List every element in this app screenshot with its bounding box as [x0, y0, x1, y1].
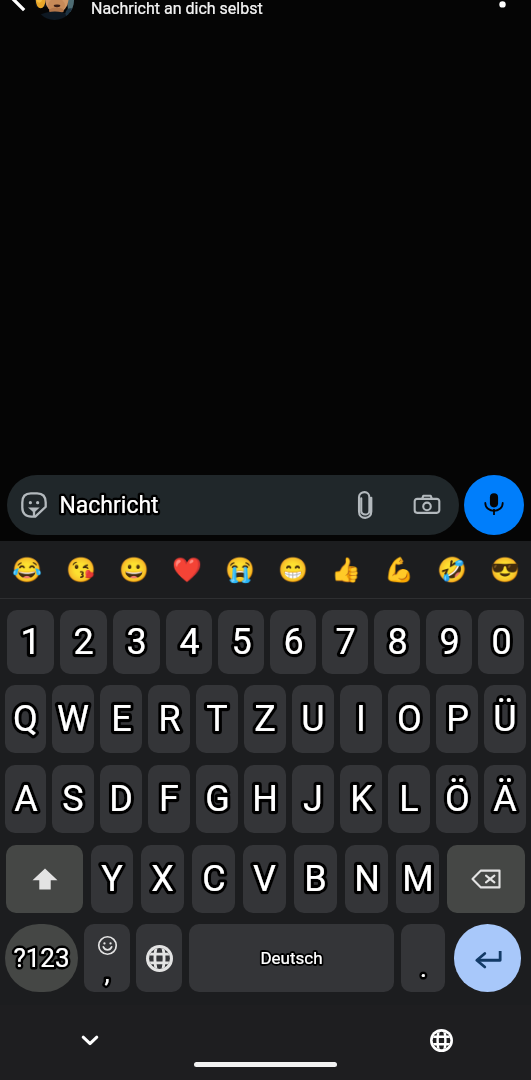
button[interactable]: C: [192, 845, 235, 913]
button[interactable]: More options: [491, 0, 531, 26]
staticText: A: [14, 778, 38, 820]
other: Stickers: [21, 492, 47, 518]
button[interactable]: 5: [218, 610, 264, 674]
button[interactable]: T: [196, 685, 238, 753]
button[interactable]: V: [243, 845, 286, 913]
staticText: 😁: [278, 556, 308, 584]
staticText: D: [109, 778, 133, 820]
button[interactable]: 9: [426, 610, 472, 674]
staticText: B: [304, 858, 327, 900]
staticText: 😭: [225, 556, 255, 584]
button[interactable]: Emoji: [84, 924, 130, 992]
button[interactable]: ?123: [5, 924, 78, 992]
button[interactable]: Back: [2, 0, 36, 26]
staticText: C: [202, 858, 226, 900]
button[interactable]: Change keyboard language: [136, 924, 182, 992]
staticText: A: [14, 778, 38, 820]
staticText: Y: [101, 858, 123, 900]
button[interactable]: H: [244, 765, 286, 833]
staticText: Y: [101, 858, 123, 900]
staticText: G: [205, 778, 230, 820]
staticText: V: [253, 858, 276, 900]
button[interactable]: Z: [244, 685, 286, 753]
button[interactable]: Camera: [413, 491, 441, 519]
button[interactable]: Stickers: [7, 475, 459, 535]
button[interactable]: U: [292, 685, 334, 753]
staticText: 💪: [384, 556, 414, 584]
button[interactable]: B: [294, 845, 337, 913]
button[interactable]: 0: [478, 610, 524, 674]
button[interactable]: X: [141, 845, 184, 913]
button[interactable]: 6: [270, 610, 316, 674]
button[interactable]: Voice message: [464, 475, 524, 535]
button[interactable]: F: [148, 765, 190, 833]
staticText: E: [111, 698, 132, 740]
button[interactable]: W: [52, 685, 94, 753]
button[interactable]: Enter: [454, 924, 521, 992]
button[interactable]: Deutsch: [189, 924, 394, 992]
button[interactable]: 💪: [372, 541, 425, 599]
button[interactable]: L: [388, 765, 430, 833]
staticText: Nachricht: [59, 492, 159, 519]
button[interactable]: K: [340, 765, 382, 833]
button[interactable]: Ö: [436, 765, 478, 833]
staticText: ❤️: [172, 556, 202, 584]
button[interactable]: J: [292, 765, 334, 833]
button[interactable]: .: [401, 924, 445, 992]
staticText: ,: [104, 958, 110, 988]
button[interactable]: N: [345, 845, 388, 913]
staticText: 0: [491, 621, 512, 663]
button[interactable]: P: [436, 685, 478, 753]
button[interactable]: 👍: [319, 541, 372, 599]
button[interactable]: Shift: [6, 845, 83, 913]
button[interactable]: Q: [5, 685, 46, 753]
staticText: O: [397, 698, 422, 740]
button[interactable]: Hide keyboard: [72, 1022, 108, 1058]
staticText: B: [304, 858, 327, 900]
button[interactable]: ❤️: [160, 541, 213, 599]
staticText: Ö: [445, 778, 470, 820]
button[interactable]: G: [196, 765, 238, 833]
button[interactable]: 😁: [266, 541, 319, 599]
staticText: Ü: [493, 698, 517, 740]
staticText: J: [303, 778, 323, 820]
button[interactable]: M: [396, 845, 439, 913]
button[interactable]: 😂: [0, 541, 54, 599]
button[interactable]: Attach file: [352, 491, 380, 519]
staticText: 9: [439, 621, 460, 663]
button[interactable]: 🤣: [425, 541, 478, 599]
button[interactable]: E: [100, 685, 142, 753]
button[interactable]: 😎: [478, 541, 531, 599]
button[interactable]: Y: [91, 845, 133, 913]
button[interactable]: R: [148, 685, 190, 753]
button[interactable]: Profile photo: [36, 0, 74, 26]
staticText: L: [399, 778, 419, 820]
button[interactable]: 7: [322, 610, 368, 674]
staticText: Ä: [493, 778, 517, 820]
staticText: 2: [73, 621, 94, 663]
button[interactable]: I: [340, 685, 382, 753]
button[interactable]: 2: [60, 610, 107, 674]
staticText: D: [109, 778, 133, 820]
button[interactable]: D: [100, 765, 142, 833]
button[interactable]: S: [52, 765, 94, 833]
button[interactable]: Switch input method: [423, 1022, 459, 1058]
staticText: Z: [254, 698, 276, 740]
button[interactable]: 4: [166, 610, 212, 674]
button[interactable]: O: [388, 685, 430, 753]
staticText: F: [159, 778, 179, 820]
button[interactable]: A: [5, 765, 46, 833]
staticText: 4: [179, 621, 200, 663]
staticText: I: [356, 698, 366, 740]
staticText: ?123: [13, 943, 70, 973]
button[interactable]: Ü: [484, 685, 526, 753]
button[interactable]: 😘: [54, 541, 107, 599]
button[interactable]: 8: [374, 610, 420, 674]
button[interactable]: 😭: [213, 541, 266, 599]
staticText: 😀: [119, 556, 149, 584]
button[interactable]: Backspace: [447, 845, 525, 913]
button[interactable]: 3: [113, 610, 160, 674]
button[interactable]: 1: [7, 610, 54, 674]
button[interactable]: 😀: [107, 541, 160, 599]
button[interactable]: Ä: [484, 765, 526, 833]
